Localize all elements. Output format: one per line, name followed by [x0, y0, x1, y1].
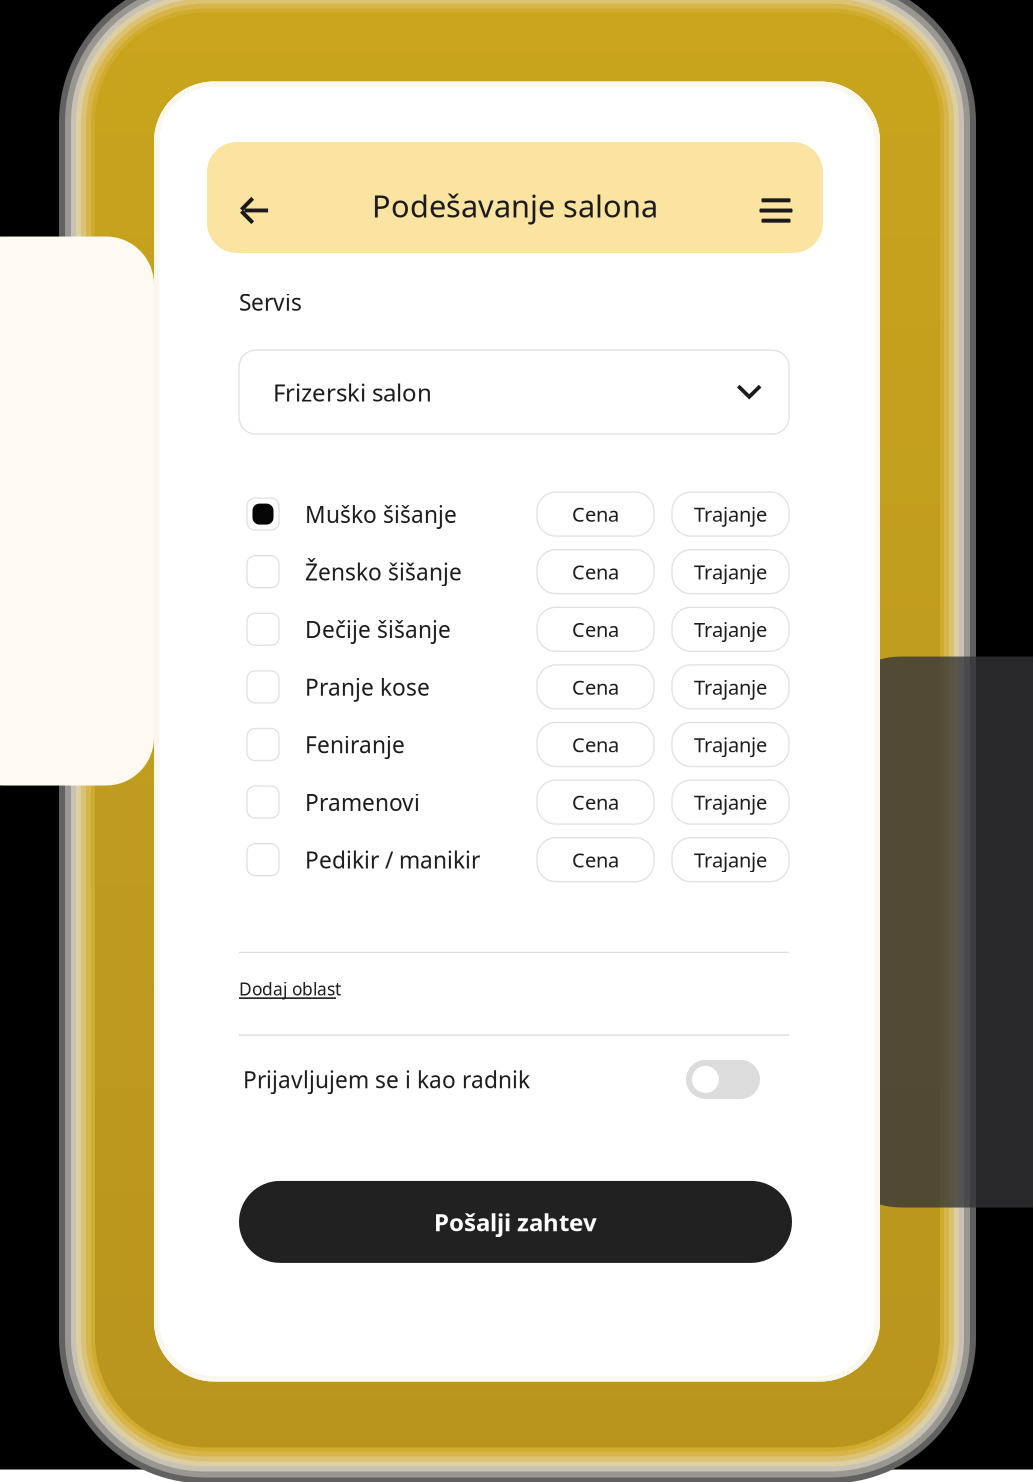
staticText: Cena	[572, 616, 619, 643]
staticText: Cena	[572, 558, 619, 585]
button[interactable]: Žensko šišanje	[247, 556, 279, 588]
staticText: Žensko šišanje	[305, 557, 462, 587]
staticText: Trajanje	[694, 789, 767, 815]
button[interactable]: Back	[225, 181, 283, 239]
button[interactable]: Prijavljujem se i kao radnik	[686, 1060, 760, 1099]
staticText: Cena	[572, 731, 619, 758]
staticText: Cena	[572, 789, 619, 815]
staticText: Dodaj oblast	[239, 977, 341, 1000]
staticText: Feniranje	[305, 729, 405, 760]
staticText: Pošalji zahtev	[434, 1206, 597, 1238]
button[interactable]: Cena	[537, 665, 654, 709]
staticText: Pedikir / manikir	[305, 845, 480, 875]
button[interactable]: Muško šišanje	[247, 498, 279, 530]
button[interactable]: Menu	[747, 181, 805, 239]
staticText: Trajanje	[694, 616, 767, 643]
staticText: Frizerski salon	[273, 376, 432, 408]
staticText: Trajanje	[694, 731, 767, 758]
button[interactable]: Cena	[537, 492, 654, 536]
button[interactable]: Cena	[537, 607, 654, 651]
staticText: Trajanje	[694, 674, 767, 700]
button[interactable]: Frizerski salon	[239, 350, 789, 434]
button[interactable]: Cena	[537, 722, 654, 766]
button[interactable]: Dodaj oblast	[239, 953, 789, 1034]
button[interactable]: Cena	[537, 780, 654, 824]
button[interactable]: Trajanje	[672, 492, 789, 536]
staticText: Prijavljujem se i kao radnik	[243, 1064, 530, 1094]
button[interactable]: Trajanje	[672, 665, 789, 709]
button[interactable]: Cena	[537, 838, 654, 882]
staticText: Pranje kose	[305, 672, 430, 702]
button[interactable]: Dečije šišanje	[247, 613, 279, 645]
button[interactable]: Cena	[537, 550, 654, 594]
staticText: Cena	[572, 674, 619, 700]
button[interactable]: Trajanje	[672, 838, 789, 882]
staticText: Trajanje	[694, 846, 767, 873]
button[interactable]: Trajanje	[672, 607, 789, 651]
staticText: Trajanje	[694, 501, 767, 527]
button[interactable]: Pedikir / manikir	[247, 844, 279, 876]
button[interactable]: Trajanje	[672, 722, 789, 766]
button[interactable]: Trajanje	[672, 550, 789, 594]
staticText: Cena	[572, 846, 619, 873]
staticText: Dečije šišanje	[305, 614, 451, 644]
staticText: Muško šišanje	[305, 499, 457, 529]
button[interactable]: Feniranje	[247, 728, 279, 760]
staticText: Trajanje	[694, 558, 767, 585]
button[interactable]: Pošalji zahtev	[239, 1181, 792, 1263]
staticText: Podešavanje salona	[372, 185, 658, 226]
staticText: Cena	[572, 501, 619, 527]
button[interactable]: Pramenovi	[247, 786, 279, 818]
staticText: Servis	[239, 287, 302, 317]
staticText: Pramenovi	[305, 787, 420, 817]
button[interactable]: Trajanje	[672, 780, 789, 824]
button[interactable]: Pranje kose	[247, 671, 279, 703]
